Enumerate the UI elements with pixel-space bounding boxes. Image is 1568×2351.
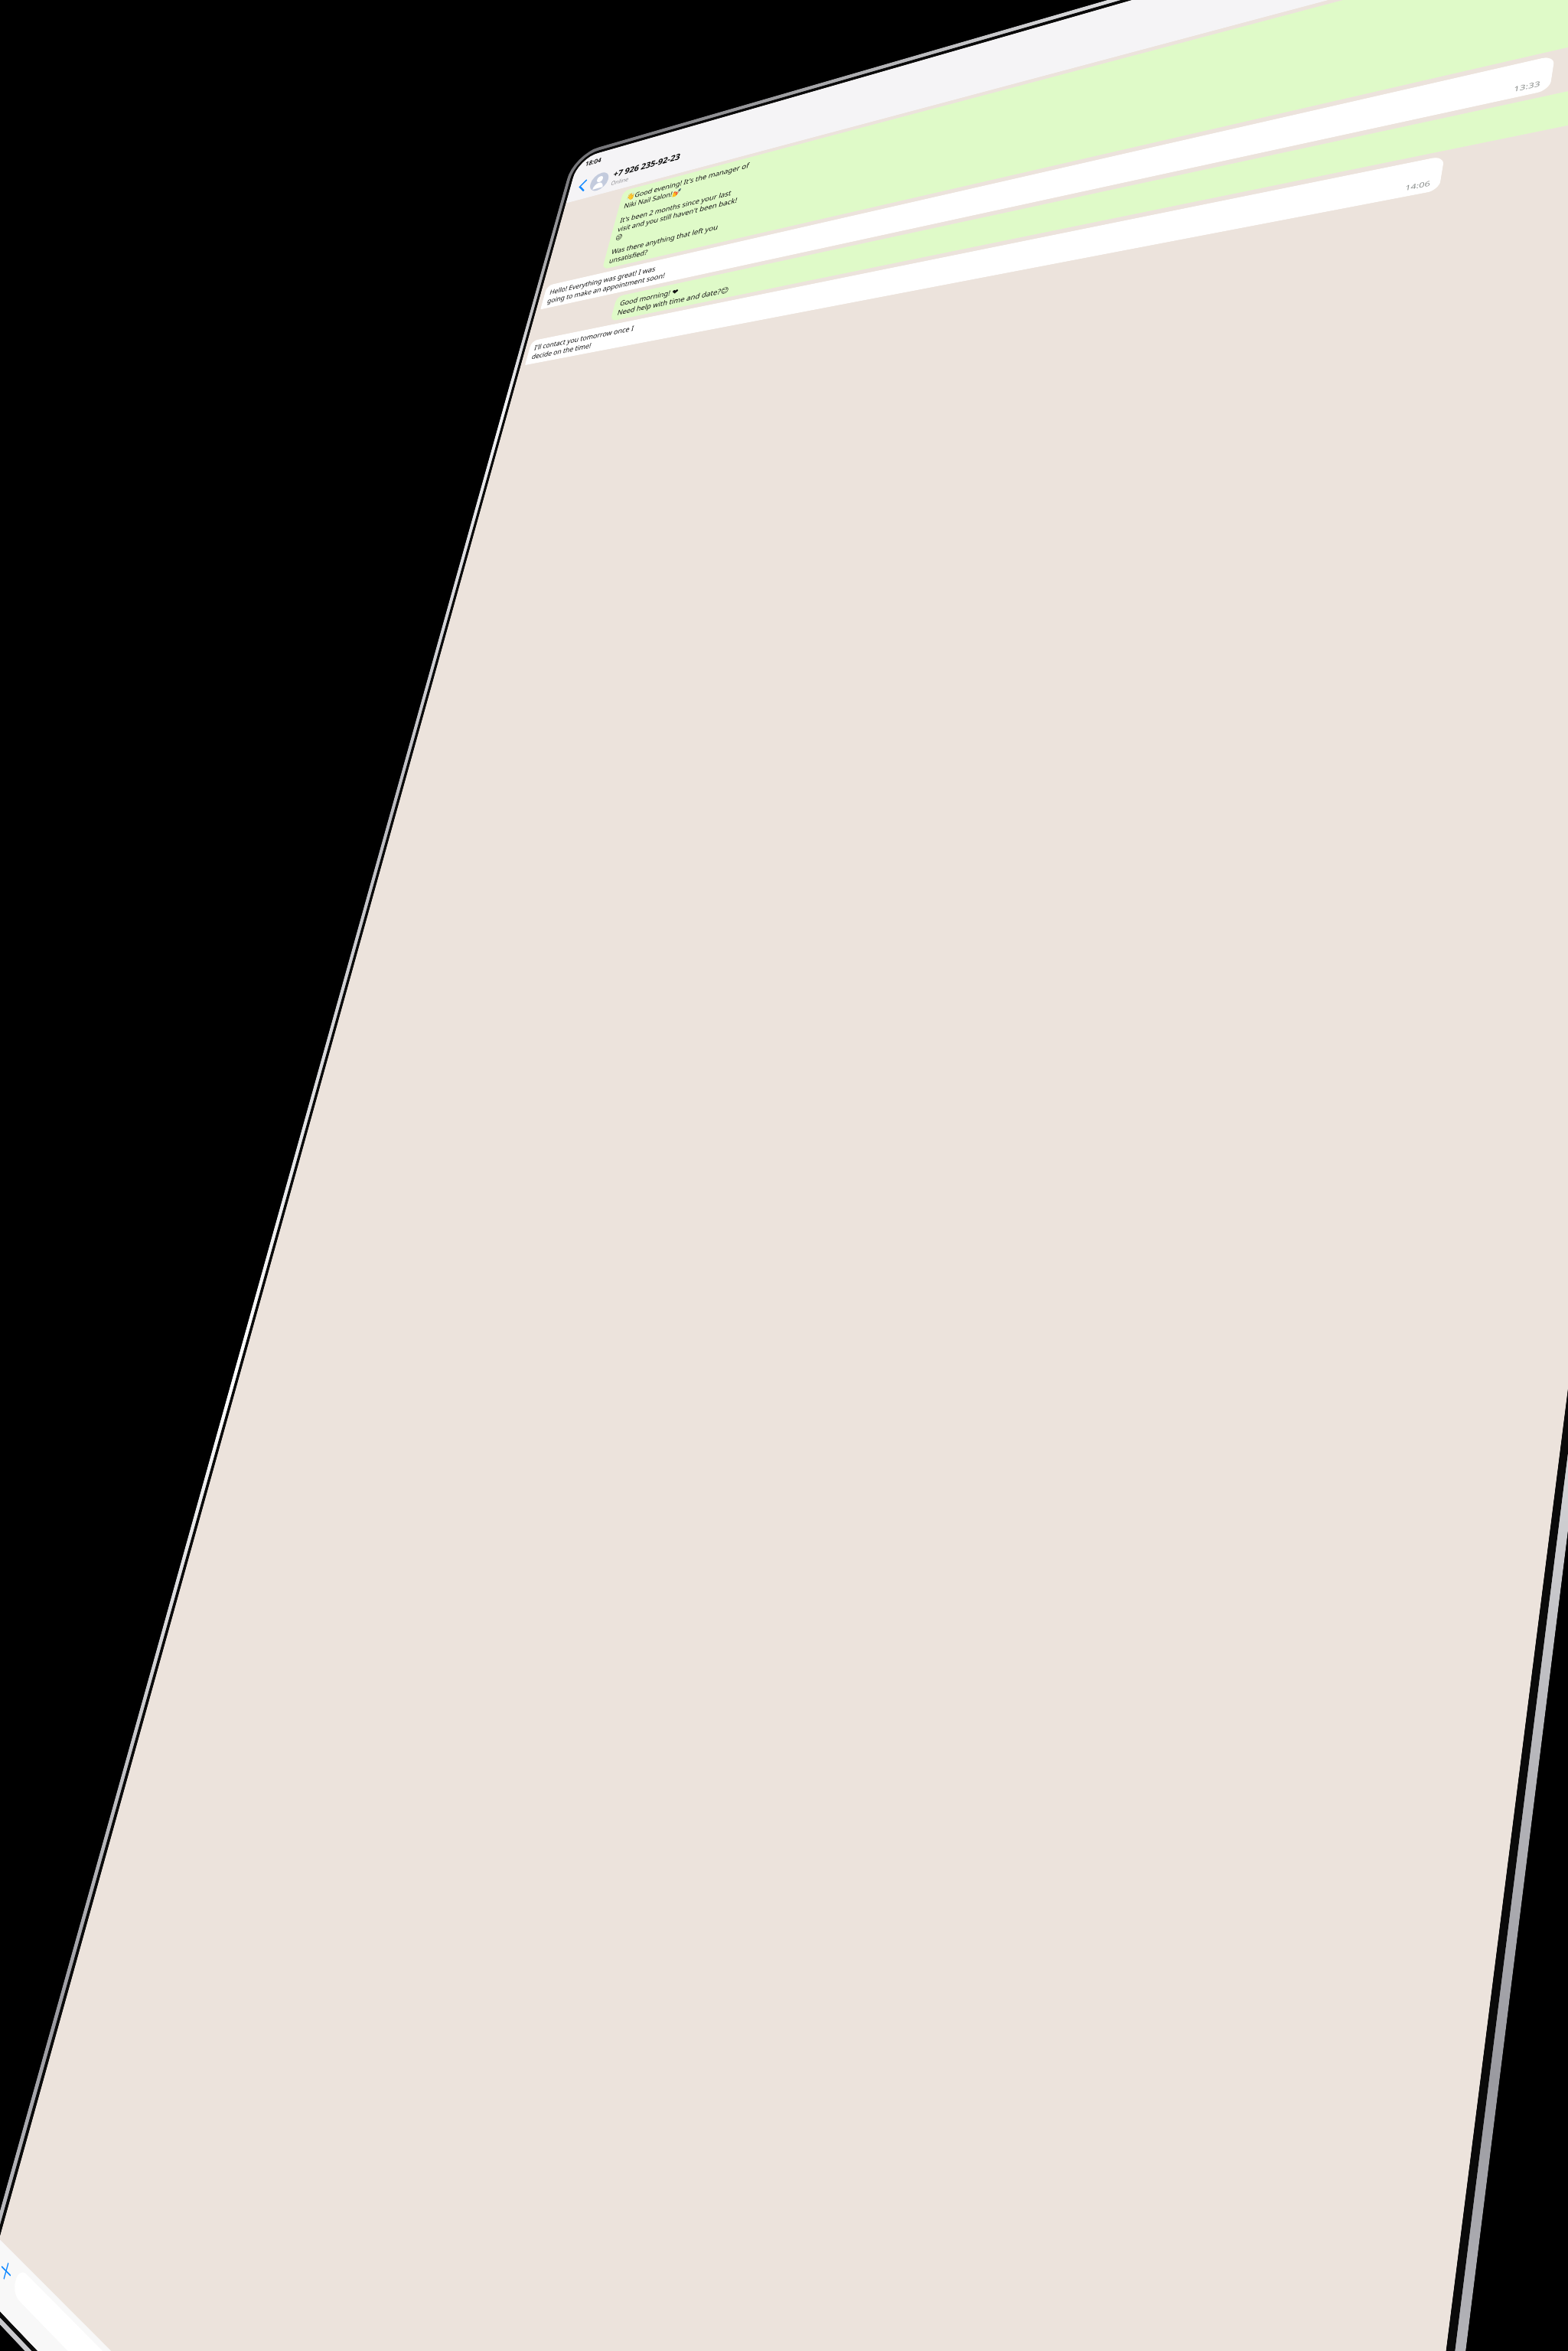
button[interactable]	[12, 2267, 1134, 2351]
staticText: Need help with time and date?😊	[616, 285, 730, 317]
staticText: I'll contact you tomorrow once I	[533, 323, 635, 352]
staticText: Good morning! ❤️	[619, 286, 680, 308]
staticText: Online	[610, 175, 630, 187]
staticText: decide on the time!	[531, 341, 592, 361]
button[interactable]: Good morning! ❤️	[610, 57, 1568, 322]
staticText: Niki Nail Salon!💅	[623, 187, 683, 211]
button[interactable]: I'll contact you tomorrow once I	[525, 156, 1445, 365]
staticText: visit and you still haven't been back!	[617, 195, 739, 234]
button[interactable]: +7 926 235-92-23	[587, 145, 683, 198]
staticText: 😔	[614, 232, 624, 242]
staticText: 👋Good evening! It's the manager of	[625, 160, 750, 202]
staticText: +7 926 235-92-23	[612, 150, 682, 179]
button[interactable]: 👋Good evening! It's the manager of	[602, 0, 1568, 270]
staticText: It's been 2 months since your last	[619, 188, 733, 225]
staticText: Was there anything that left you	[611, 222, 720, 256]
staticText: going to make an appointment soon!	[546, 270, 666, 306]
button[interactable]: Attach	[0, 2250, 17, 2291]
staticText: 13:33	[1513, 78, 1542, 94]
staticText: unsatisfied?	[608, 247, 649, 265]
staticText: Hello! Everything was great! I was	[549, 264, 657, 297]
button[interactable]: Hello! Everything was great! I was	[540, 55, 1555, 310]
staticText: 14:06	[1404, 178, 1431, 193]
staticText: 18:04	[584, 155, 603, 168]
button[interactable]: Back	[570, 173, 595, 199]
